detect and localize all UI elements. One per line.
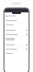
button[interactable] — [4, 19, 29, 23]
button[interactable] — [4, 47, 29, 51]
button[interactable] — [4, 33, 29, 37]
staticText: Overview — [8, 15, 15, 17]
button[interactable] — [4, 43, 29, 47]
button[interactable] — [4, 51, 29, 55]
button[interactable] — [4, 23, 29, 27]
button[interactable] — [4, 28, 29, 32]
staticText: Engage — [11, 2, 21, 5]
button[interactable] — [4, 37, 29, 41]
